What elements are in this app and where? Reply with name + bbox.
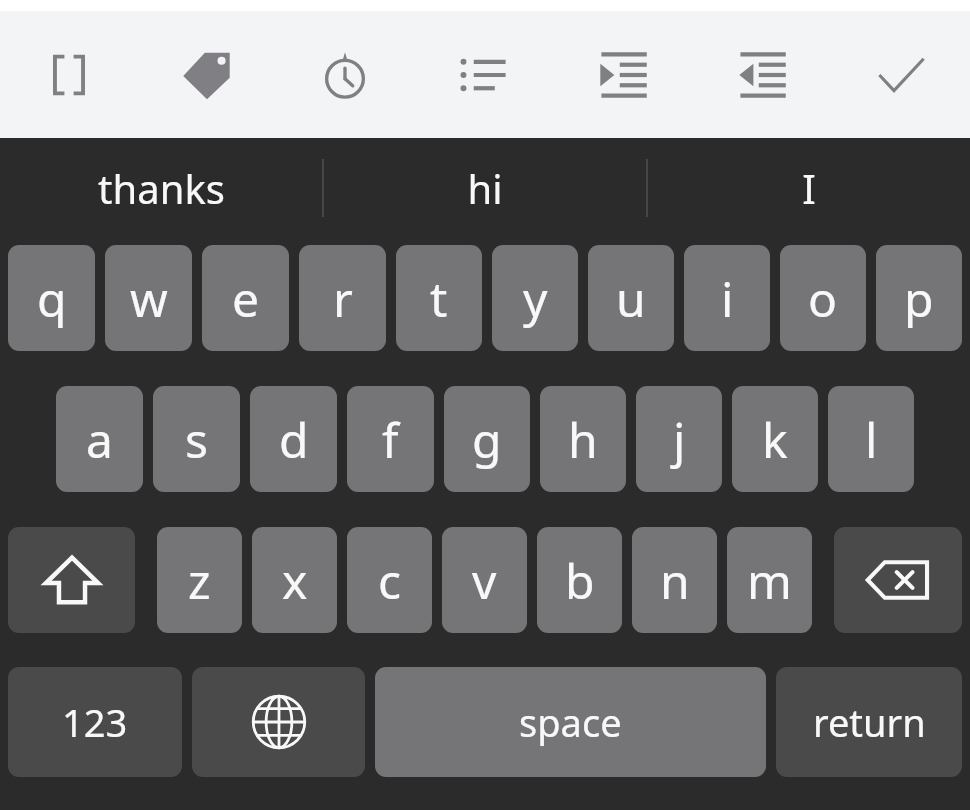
button[interactable]: k <box>732 386 818 492</box>
staticText: thanks <box>98 161 225 215</box>
staticText: v <box>472 548 497 613</box>
button[interactable]: Change keyboard <box>192 667 365 777</box>
staticText: k <box>762 407 788 472</box>
staticText: y <box>523 266 548 331</box>
staticText: h <box>568 407 598 472</box>
button[interactable]: I <box>648 138 970 238</box>
button[interactable]: c <box>347 527 432 633</box>
button[interactable]: n <box>632 527 717 633</box>
button[interactable]: v <box>442 527 527 633</box>
button[interactable]: y <box>492 245 578 351</box>
staticText: space <box>519 696 622 748</box>
staticText: j <box>673 407 686 472</box>
staticText: g <box>472 407 502 472</box>
staticText: f <box>382 407 399 472</box>
button[interactable]: Bulleted list <box>414 11 553 138</box>
staticText: z <box>188 548 211 613</box>
button[interactable]: p <box>876 245 962 351</box>
staticText: l <box>865 407 878 472</box>
button[interactable]: Backspace <box>834 527 962 633</box>
button[interactable]: r <box>299 245 386 351</box>
staticText: s <box>185 407 208 472</box>
button[interactable]: t <box>396 245 482 351</box>
button[interactable]: j <box>636 386 722 492</box>
staticText: p <box>904 266 934 331</box>
button[interactable]: Timer <box>276 11 414 138</box>
staticText: w <box>130 266 168 331</box>
staticText: n <box>660 548 690 613</box>
button[interactable]: Shift <box>8 527 135 633</box>
button[interactable]: d <box>250 386 337 492</box>
staticText: r <box>333 266 353 331</box>
button[interactable]: Decrease indent <box>692 11 831 138</box>
button[interactable]: hi <box>324 138 646 238</box>
button[interactable]: s <box>153 386 240 492</box>
button[interactable]: i <box>684 245 770 351</box>
button[interactable]: g <box>444 386 530 492</box>
staticText: a <box>86 407 113 472</box>
staticText: o <box>808 266 838 331</box>
staticText: e <box>232 266 260 331</box>
button[interactable]: l <box>828 386 914 492</box>
button[interactable]: u <box>588 245 674 351</box>
staticText: i <box>721 266 734 331</box>
button[interactable]: Increase indent <box>553 11 692 138</box>
button[interactable]: q <box>8 245 95 351</box>
staticText: x <box>282 548 308 613</box>
staticText: t <box>430 266 448 331</box>
button[interactable]: space <box>375 667 766 777</box>
button[interactable]: b <box>537 527 622 633</box>
button[interactable]: a <box>56 386 143 492</box>
button[interactable]: x <box>252 527 337 633</box>
button[interactable]: f <box>347 386 434 492</box>
staticText: return <box>813 696 926 748</box>
staticText: hi <box>467 161 503 215</box>
staticText: m <box>747 548 792 613</box>
button[interactable]: Done <box>831 11 970 138</box>
staticText: I <box>802 161 816 215</box>
button[interactable]: Tag <box>138 11 276 138</box>
button[interactable]: Brackets <box>0 11 138 138</box>
staticText: b <box>565 548 595 613</box>
staticText: d <box>279 407 309 472</box>
button[interactable]: thanks <box>0 138 322 238</box>
button[interactable]: e <box>202 245 289 351</box>
staticText: 123 <box>62 696 128 748</box>
button[interactable]: 123 <box>8 667 182 777</box>
button[interactable]: return <box>776 667 962 777</box>
staticText: u <box>616 266 646 331</box>
staticText: q <box>37 266 67 331</box>
button[interactable]: m <box>727 527 812 633</box>
button[interactable]: o <box>780 245 866 351</box>
button[interactable]: h <box>540 386 626 492</box>
button[interactable]: z <box>157 527 242 633</box>
staticText: c <box>378 548 402 613</box>
button[interactable]: w <box>105 245 192 351</box>
